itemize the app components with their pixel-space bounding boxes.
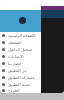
staticText: المفضلة xyxy=(8,40,22,45)
button[interactable]: اتصل بنا xyxy=(0,60,41,67)
staticText: الخروج xyxy=(8,88,20,93)
staticText: تقييم التطبيق xyxy=(8,82,30,87)
button[interactable]: تسجيل الدخول xyxy=(0,46,41,53)
staticText: تسجيل الدخول xyxy=(8,47,33,52)
button[interactable]: عن التطبيق xyxy=(0,67,41,74)
staticText: اتصل بنا xyxy=(8,61,22,66)
button[interactable]: مشاركة التطبيق xyxy=(0,74,41,81)
staticText: الصفحة الرئيسية xyxy=(8,33,36,38)
button[interactable]: تقييم التطبيق xyxy=(0,81,41,88)
button[interactable]: الإعدادات xyxy=(0,53,41,60)
button[interactable]: المفضلة xyxy=(0,39,41,46)
button[interactable]: الخروج xyxy=(0,88,41,93)
button[interactable]: الصفحة الرئيسية xyxy=(0,32,41,39)
staticText: مشاركة التطبيق xyxy=(8,75,35,80)
staticText: عن التطبيق xyxy=(8,68,28,73)
staticText: الإعدادات xyxy=(8,54,24,59)
